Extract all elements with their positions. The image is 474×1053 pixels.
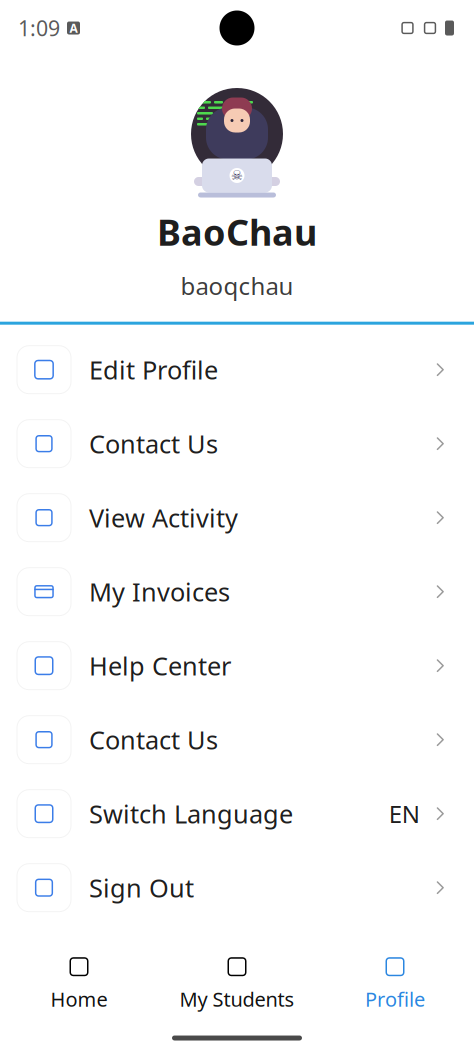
button[interactable]: Edit Profile [0,333,474,407]
staticText: Help Center [89,649,231,682]
button[interactable]: View Activity [0,481,474,555]
staticText: Contact Us [89,723,218,756]
staticText: Edit Profile [89,353,218,386]
staticText: EN [389,798,420,830]
staticText: Sign Out [89,871,194,904]
button[interactable]: My Invoices [0,555,474,629]
staticText: My Invoices [89,575,230,608]
button[interactable]: Contact Us [0,407,474,481]
button[interactable]: Home [0,945,158,1023]
button[interactable]: Contact Us [0,703,474,777]
staticText: baoqchau [180,270,293,302]
staticText: My Students [179,986,294,1012]
button[interactable]: Switch Language [0,777,474,851]
button[interactable]: Profile [316,945,474,1023]
button[interactable]: Sign Out [0,851,474,925]
staticText: 1:09 [18,14,60,42]
button[interactable]: My Students [158,945,316,1023]
staticText: View Activity [89,501,238,534]
staticText: Switch Language [89,797,293,830]
staticText: Home [50,986,107,1012]
button[interactable]: Help Center [0,629,474,703]
staticText: BaoChau [157,208,317,256]
staticText: Profile [365,986,425,1012]
staticText: ☠ [231,168,243,183]
staticText: A [69,20,77,36]
staticText: Contact Us [89,427,218,460]
